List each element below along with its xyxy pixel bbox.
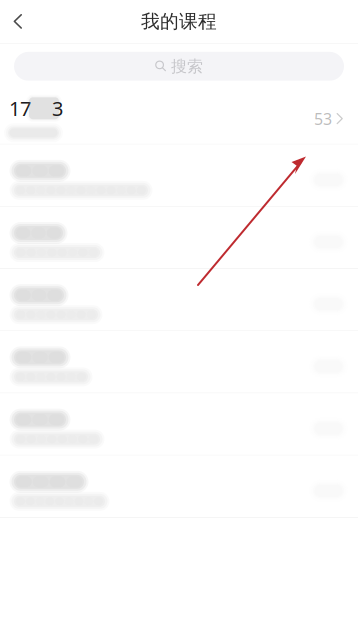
staticText: 搜索 xyxy=(171,56,203,76)
button[interactable] xyxy=(0,269,358,330)
button[interactable]: Back xyxy=(0,2,39,41)
staticText: 53 xyxy=(314,108,332,129)
button[interactable] xyxy=(0,393,358,455)
button[interactable] xyxy=(0,207,358,268)
button[interactable] xyxy=(0,331,358,393)
button[interactable]: 搜索 xyxy=(14,52,344,81)
button[interactable]: 17 xyxy=(0,81,358,144)
button[interactable] xyxy=(0,145,358,206)
staticText: 3 xyxy=(52,95,63,122)
staticText: 17 xyxy=(9,95,31,122)
staticText: 我的课程 xyxy=(141,10,217,33)
button[interactable] xyxy=(0,456,358,517)
